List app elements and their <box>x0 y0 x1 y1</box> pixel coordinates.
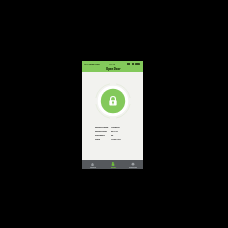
staticText: Door <box>111 166 116 169</box>
staticText: Device name <box>95 126 109 129</box>
staticText: RS-121 <box>111 130 119 133</box>
button[interactable]: Home <box>82 160 103 169</box>
staticText: Settings <box>129 166 137 169</box>
staticText: 4G <box>97 62 101 65</box>
staticText: 100door <box>111 126 120 129</box>
staticText: 100door <box>111 126 120 129</box>
staticText: ringtone <box>89 62 99 65</box>
staticText: Home <box>90 166 96 169</box>
staticText: 12:05 AM <box>111 138 121 141</box>
staticText: Door <box>111 166 116 169</box>
staticText: 4G <box>97 62 101 65</box>
staticText: Time <box>95 138 101 141</box>
staticText: Firmware <box>95 134 105 137</box>
staticText: Open Door <box>106 67 121 71</box>
staticText: v2 <box>111 134 114 137</box>
staticText: v2 <box>111 134 114 137</box>
staticText: Time <box>95 138 101 141</box>
staticText: Time <box>95 138 101 141</box>
staticText: Device name <box>95 126 109 129</box>
staticText: Settings <box>129 166 137 169</box>
staticText: Open Door <box>106 67 121 71</box>
staticText: Device type <box>95 130 107 133</box>
staticText: Device type <box>95 130 107 133</box>
staticText: 10:10 <box>109 62 116 65</box>
staticText: Device name <box>95 126 109 129</box>
staticText: MTN-NG <box>84 62 94 65</box>
button[interactable]: Unlock door <box>93 81 133 121</box>
staticText: 12:05 AM <box>111 138 121 141</box>
staticText: Open Door <box>106 67 121 71</box>
staticText: Home <box>90 166 96 169</box>
staticText: MTN-NG <box>84 62 94 65</box>
staticText: RS-121 <box>111 130 119 133</box>
button[interactable]: Door <box>103 160 123 169</box>
staticText: ringtone <box>89 62 99 65</box>
staticText: Device type <box>95 130 107 133</box>
staticText: RS-121 <box>111 130 119 133</box>
button[interactable]: Settings <box>123 160 143 169</box>
staticText: Firmware <box>95 134 105 137</box>
staticText: 12:05 AM <box>111 138 121 141</box>
staticText: Firmware <box>95 134 105 137</box>
staticText: 10:10 <box>109 62 116 65</box>
staticText: 100door <box>111 126 120 129</box>
staticText: v2 <box>111 134 114 137</box>
